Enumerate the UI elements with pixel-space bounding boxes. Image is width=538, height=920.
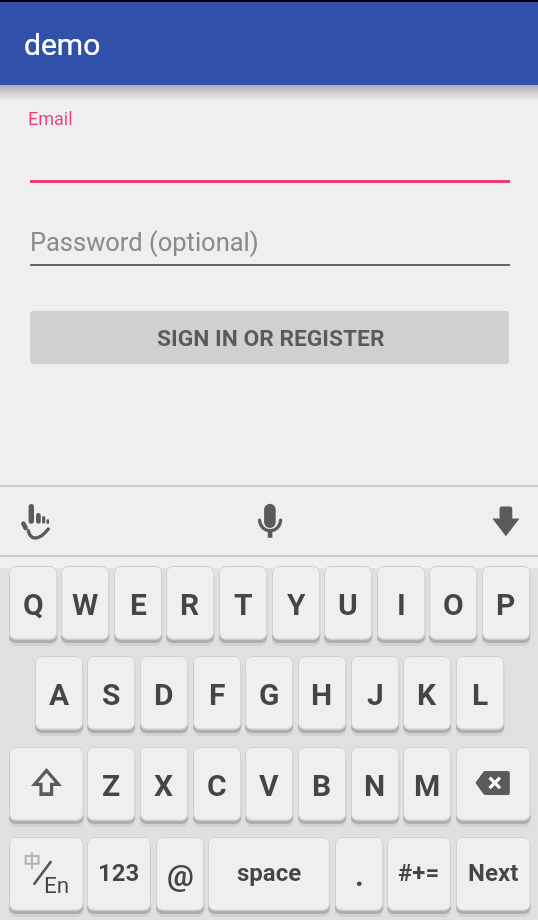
staticText: N (364, 768, 386, 803)
button[interactable]: W (61, 566, 109, 640)
staticText: K (417, 677, 437, 712)
staticText: R (180, 587, 200, 622)
button[interactable]: U (324, 566, 372, 640)
button[interactable]: H (298, 656, 346, 730)
other: Switch language (23, 851, 71, 897)
button[interactable]: C (193, 747, 241, 821)
other: Handwriting input (20, 503, 51, 540)
button[interactable]: Z (87, 747, 135, 821)
button[interactable]: #+= (387, 837, 451, 911)
button[interactable]: Shift (9, 747, 84, 821)
staticText: F (209, 677, 226, 712)
staticText: C (207, 768, 227, 803)
staticText: space (237, 859, 302, 887)
staticText: P (496, 587, 516, 622)
button[interactable]: P (482, 566, 530, 640)
staticText: A (49, 677, 70, 712)
button[interactable]: V (245, 747, 293, 821)
button[interactable]: @ (156, 837, 204, 911)
button[interactable]: I (377, 566, 425, 640)
staticText: Next (468, 859, 519, 887)
button[interactable]: X (140, 747, 188, 821)
staticText: SIGN IN OR REGISTER (157, 325, 385, 352)
button[interactable]: SIGN IN OR REGISTER (30, 311, 509, 364)
staticText: Y (287, 587, 306, 622)
staticText: D (154, 677, 174, 712)
staticText: H (311, 677, 333, 712)
staticText: O (443, 587, 464, 622)
button[interactable]: space (208, 837, 330, 911)
button[interactable]: D (140, 656, 188, 730)
staticText: @ (167, 858, 194, 893)
button[interactable]: E (114, 566, 162, 640)
button[interactable]: Backspace (456, 747, 531, 821)
button[interactable]: N (351, 747, 399, 821)
staticText: L (472, 677, 489, 712)
other: Voice input (257, 503, 283, 539)
staticText: U (338, 587, 358, 622)
button[interactable]: A (35, 656, 83, 730)
other: Hide keyboard (492, 506, 520, 537)
staticText: Q (23, 587, 44, 622)
staticText: I (397, 587, 406, 622)
staticText: #+= (398, 859, 440, 887)
staticText: Password (optional) (30, 227, 259, 257)
staticText: W (72, 587, 99, 622)
staticText: X (154, 768, 174, 803)
button[interactable]: F (193, 656, 241, 730)
staticText: demo (24, 27, 101, 62)
button[interactable]: Next (456, 837, 531, 911)
button[interactable]: R (166, 566, 214, 640)
staticText: S (102, 677, 121, 712)
button[interactable]: Y (272, 566, 320, 640)
staticText: . (355, 858, 364, 893)
staticText: V (259, 768, 279, 803)
button[interactable]: T (219, 566, 267, 640)
button[interactable]: 123 (87, 837, 151, 911)
staticText: B (312, 768, 332, 803)
staticText: M (414, 768, 441, 803)
button[interactable]: Q (9, 566, 57, 640)
button[interactable]: . (335, 837, 383, 911)
button[interactable]: K (403, 656, 451, 730)
button[interactable]: O (429, 566, 477, 640)
button[interactable]: L (456, 656, 504, 730)
button[interactable]: S (87, 656, 135, 730)
staticText: E (130, 587, 147, 622)
button[interactable]: Switch language (9, 837, 84, 911)
button[interactable]: J (351, 656, 399, 730)
staticText: Z (102, 768, 121, 803)
button[interactable]: M (403, 747, 451, 821)
staticText: 123 (98, 859, 140, 887)
other: Backspace (475, 771, 510, 795)
staticText: En (44, 872, 70, 898)
staticText: G (259, 677, 280, 712)
other: Shift (31, 768, 62, 796)
button[interactable]: B (298, 747, 346, 821)
staticText: J (367, 677, 384, 712)
staticText: Email (28, 108, 73, 129)
staticText: T (234, 587, 253, 622)
button[interactable]: G (245, 656, 293, 730)
